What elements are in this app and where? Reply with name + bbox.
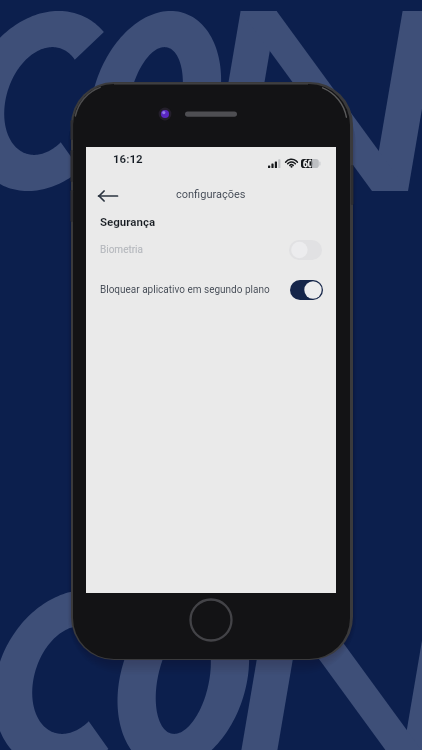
staticText: Segurança <box>100 215 156 228</box>
button[interactable]: Bloquear aplicativo em segundo plano <box>86 276 336 304</box>
staticText: Biometria <box>100 244 143 256</box>
staticText: configurações <box>176 188 246 201</box>
staticText: 16:12 <box>113 152 143 165</box>
staticText: 60 <box>303 159 313 168</box>
button[interactable]: Biometria <box>86 236 336 264</box>
button[interactable]: Voltar <box>95 185 121 207</box>
staticText: 60 <box>303 159 313 168</box>
staticText: Bloquear aplicativo em segundo plano <box>100 284 270 296</box>
